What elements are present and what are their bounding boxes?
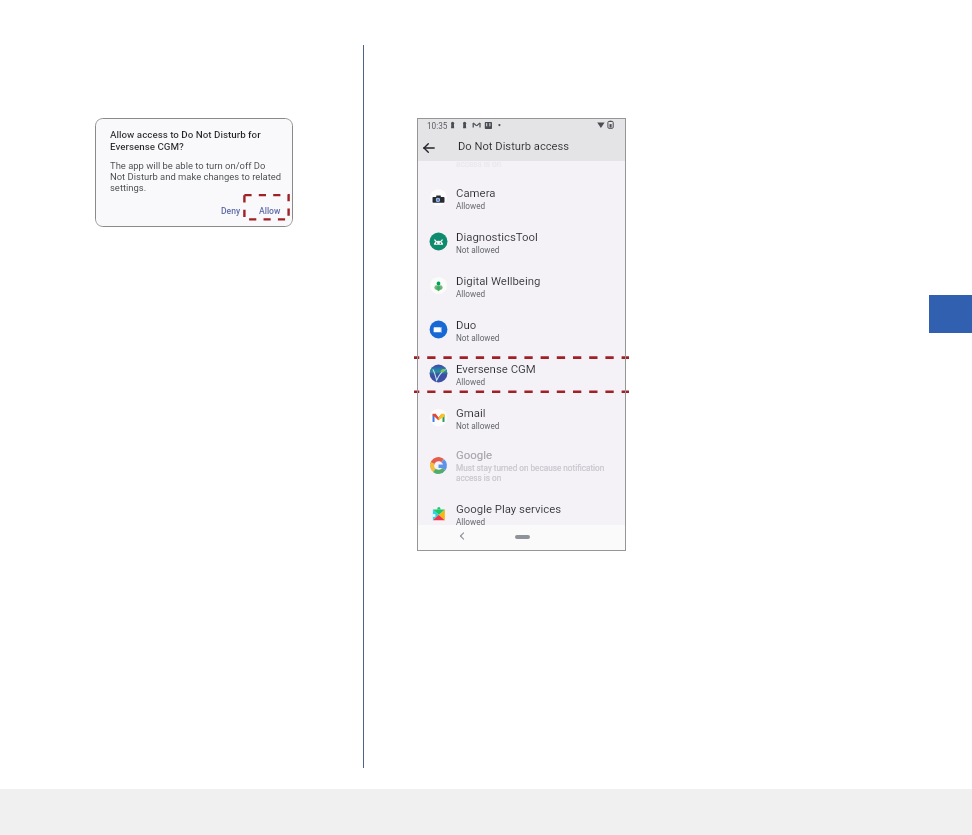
staticText: Allow access to Do Not Disturb for Evers… [110,129,261,153]
staticText: Allowed [456,201,486,211]
button[interactable]: Allow [252,202,288,220]
button[interactable]: Deny [215,202,247,220]
button[interactable]: Duo [417,307,626,351]
button[interactable]: Back [420,138,440,158]
staticText: Duo [456,318,477,331]
staticText: Deny [221,206,241,216]
staticText: Not allowed [456,333,500,343]
staticText: Do Not Disturb access [458,140,570,153]
staticText: Eversense CGM [456,362,536,375]
button[interactable]: Home [515,535,530,539]
staticText: Allowed [456,289,486,299]
button[interactable]: DiagnosticsTool [417,219,626,263]
staticText: 10:35 [427,121,448,131]
staticText: Google [456,448,492,461]
staticText: access is on [456,161,502,169]
button[interactable]: Google Play services [417,491,626,525]
button[interactable]: Gmail [417,395,626,439]
staticText: Gmail [456,406,486,419]
button[interactable]: Eversense CGM [417,351,626,395]
staticText: Allowed [456,517,486,525]
staticText: The app will be able to turn on/off Do N… [110,160,282,193]
staticText: Camera [456,186,496,199]
button[interactable]: Google [417,439,626,491]
staticText: Digital Wellbeing [456,274,541,287]
staticText: Not allowed [456,421,500,431]
staticText: DiagnosticsTool [456,230,538,243]
button[interactable]: Digital Wellbeing [417,263,626,307]
button[interactable]: Back [454,528,470,544]
staticText: Not allowed [456,245,500,255]
button[interactable]: Camera [417,175,626,219]
staticText: Allowed [456,377,486,387]
staticText: Google Play services [456,502,562,515]
staticText: Must stay turned on because notification… [456,463,605,483]
staticText: Allow [259,206,281,216]
